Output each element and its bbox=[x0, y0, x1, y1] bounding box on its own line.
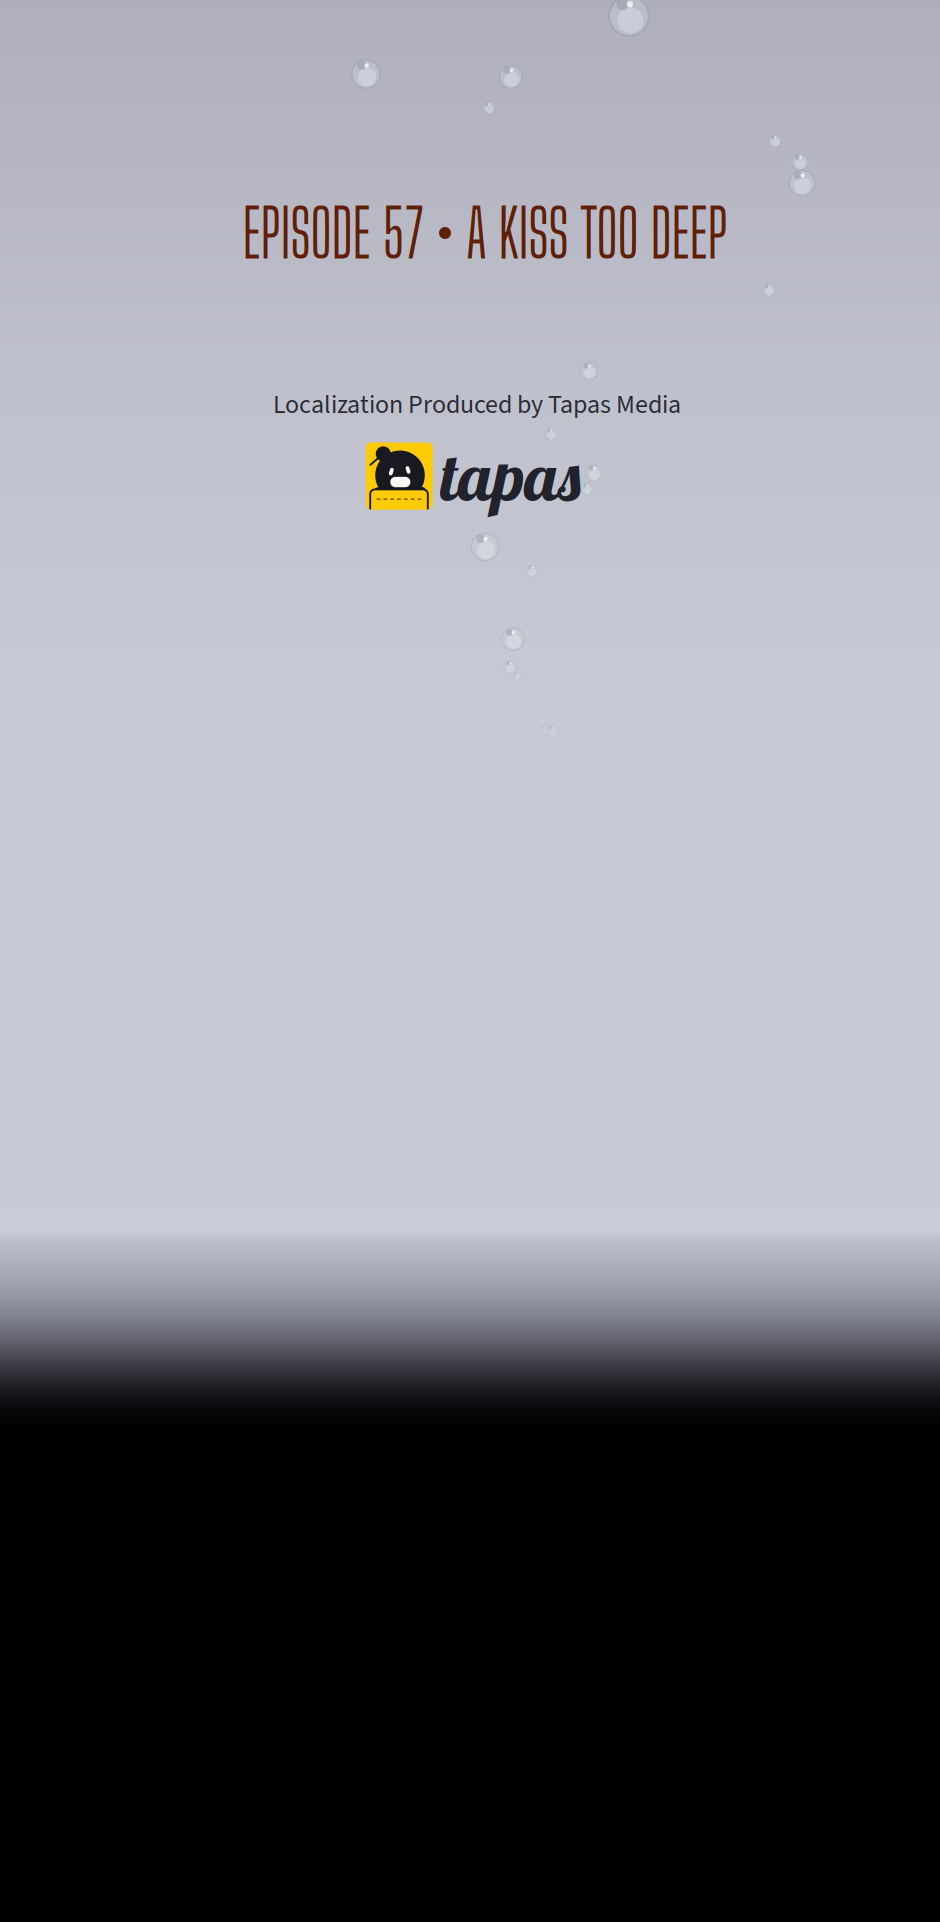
button[interactable]: tapas bbox=[365, 434, 580, 518]
staticText: Localization Produced by Tapas Media bbox=[273, 386, 681, 423]
staticText: EPISODE 57 bbox=[242, 198, 423, 268]
staticText: tapas bbox=[440, 434, 580, 518]
staticText: A KISS TOO DEEP bbox=[466, 198, 727, 268]
